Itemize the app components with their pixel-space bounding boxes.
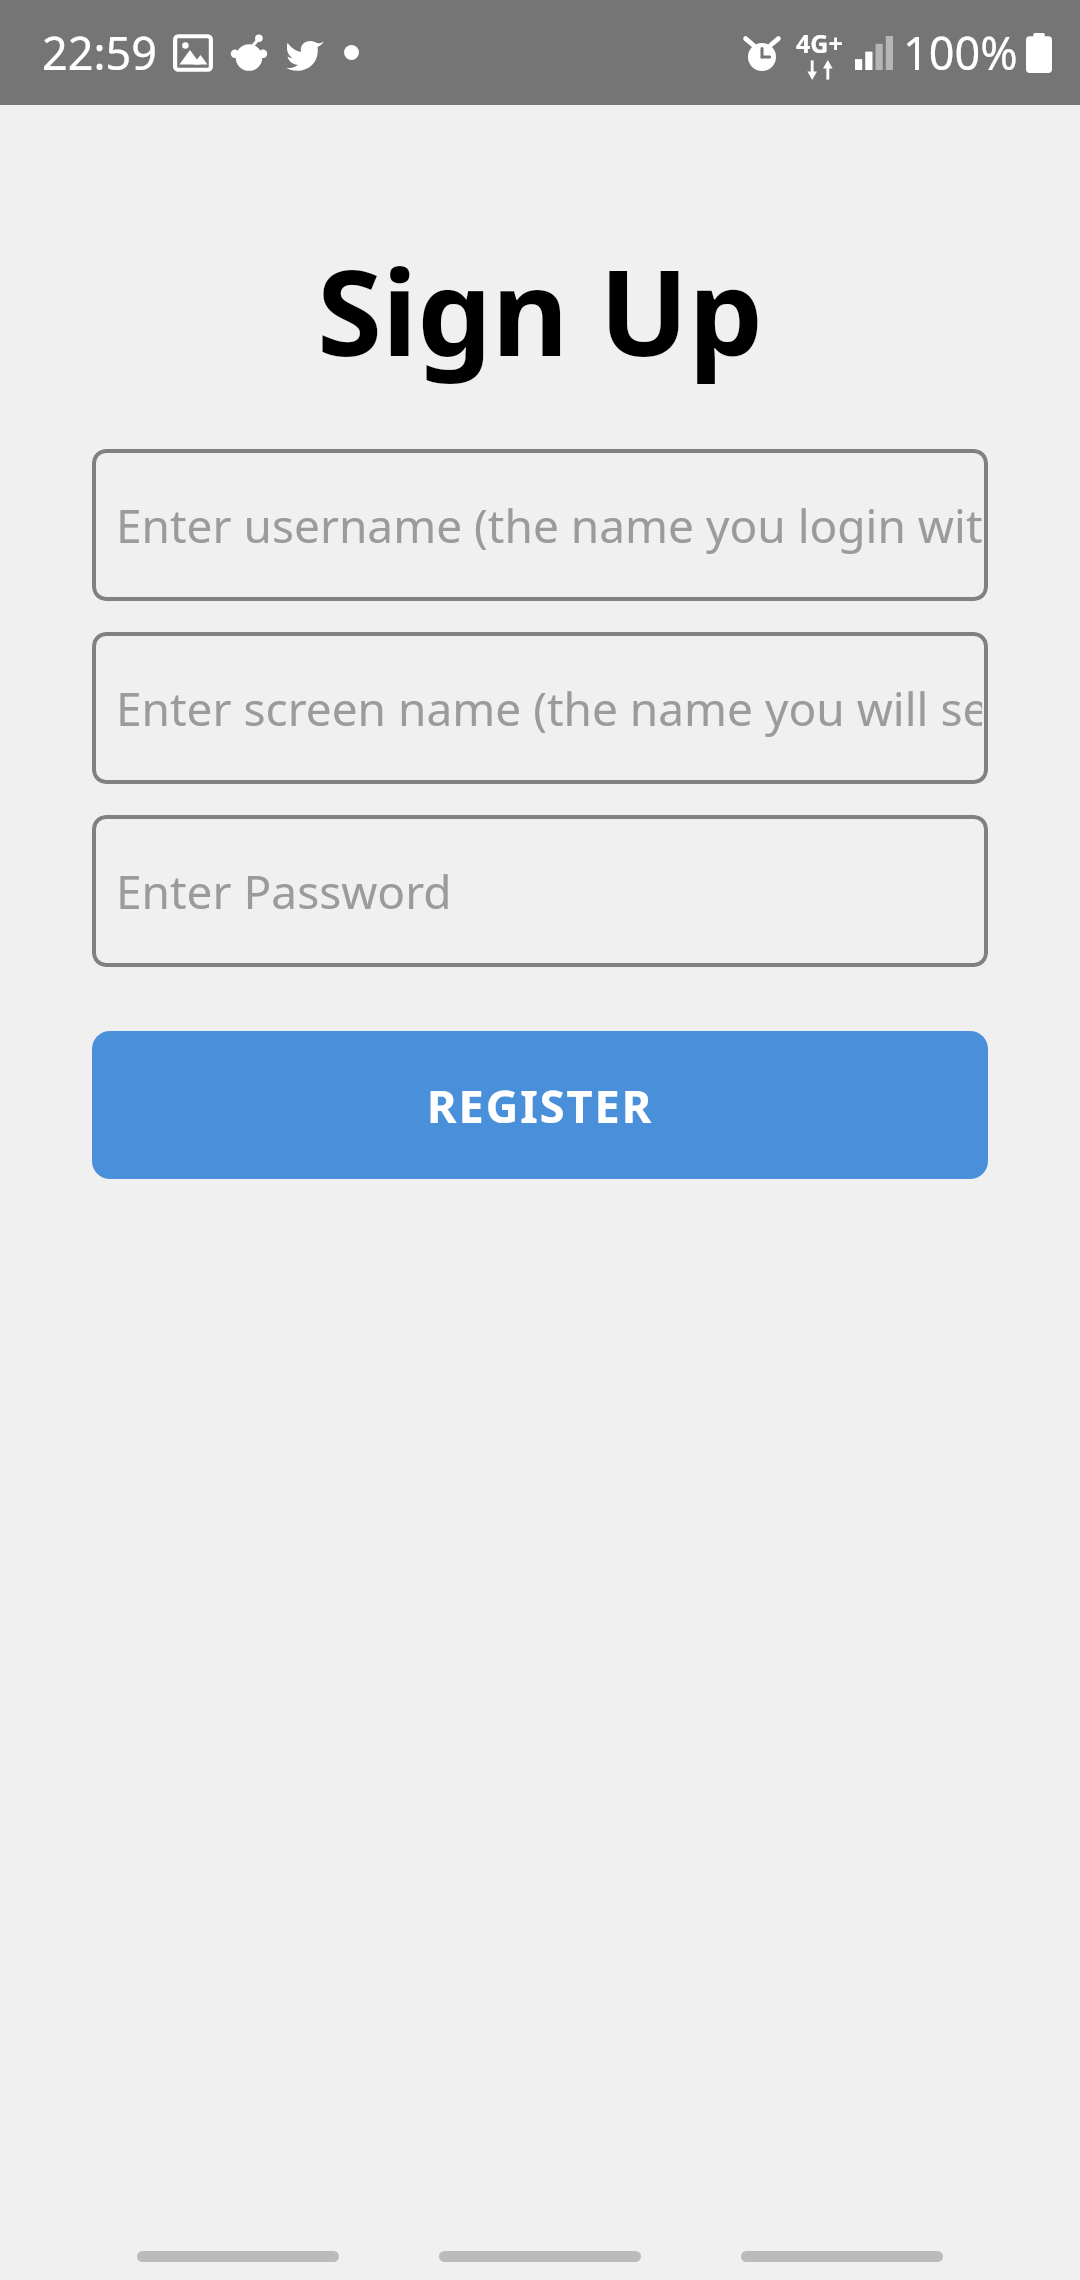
button[interactable]: Enter username (the name you login with) [92,449,988,601]
button[interactable]: Enter Password [92,815,988,967]
staticText: Enter screen name (the name you will see… [116,677,982,740]
staticText: Enter username (the name you login with) [116,494,982,557]
staticText: 22:59 [42,22,158,83]
staticText: 100% [903,22,1018,83]
staticText: Sign Up [0,230,1080,391]
staticText: REGISTER [427,1075,654,1136]
button[interactable]: Enter screen name (the name you will see… [92,632,988,784]
button[interactable]: REGISTER [92,1031,988,1179]
staticText: 4G+ [796,26,843,60]
staticText: Enter Password [116,860,452,923]
